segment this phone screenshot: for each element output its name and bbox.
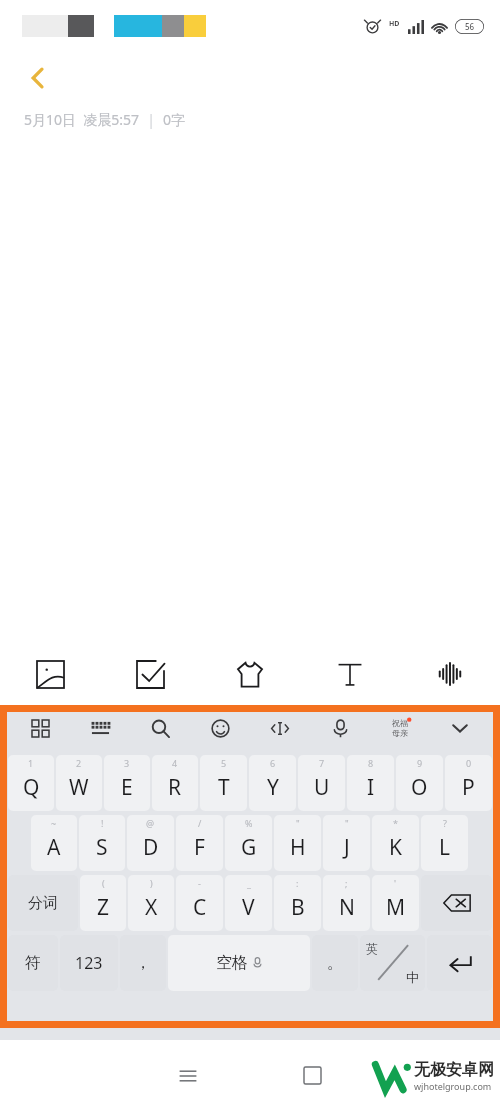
button[interactable]: 0 [445,755,492,811]
staticText: N [339,893,355,922]
button[interactable]: Cursor [250,705,310,751]
staticText: K [389,833,402,862]
button[interactable]: 1 [8,755,54,811]
button[interactable]: Voice input [400,643,500,705]
button[interactable]: 5 [200,755,247,811]
staticText: F [194,833,205,862]
button[interactable]: ~ [31,815,77,871]
button[interactable]: 符 [8,935,58,991]
button[interactable]: Backspace [421,875,492,931]
staticText: ( [102,877,105,889]
button[interactable]: 4 [152,755,198,811]
button[interactable]: Apps [10,705,70,751]
button[interactable]: Text format [300,643,400,705]
staticText: I [367,773,375,802]
staticText: B [291,893,305,922]
staticText: | [140,110,163,129]
button[interactable]: Style [200,643,300,705]
button[interactable]: Emoji [190,705,250,751]
button[interactable]: Insert image [0,643,100,705]
staticText: C [193,893,207,922]
staticText: 1 [28,757,34,769]
staticText: 123 [75,952,103,974]
staticText: : [296,877,299,889]
button[interactable]: * [372,815,419,871]
staticText: J [344,833,350,862]
button[interactable]: ' [372,875,419,931]
button[interactable]: 2 [56,755,102,811]
button[interactable]: Phrases [370,705,430,751]
staticText: O [411,773,428,802]
button[interactable]: Back [14,54,62,102]
staticText: " [296,817,300,829]
button[interactable]: ! [79,815,125,871]
button[interactable]: @ [127,815,174,871]
staticText: 分词 [28,894,58,913]
button[interactable]: 9 [396,755,443,811]
button[interactable]: Voice [310,705,370,751]
staticText: % [245,817,253,829]
button[interactable]: 7 [298,755,345,811]
button[interactable]: " [274,815,321,871]
staticText: 6 [270,757,276,769]
staticText: G [241,833,257,862]
staticText: HD [389,19,400,29]
button[interactable]: Hide keyboard [430,705,490,751]
button[interactable]: ， [120,935,166,991]
button[interactable]: 6 [249,755,296,811]
staticText: 0字 [163,110,186,129]
staticText: R [168,773,182,802]
staticText: 母亲 [392,728,408,738]
staticText: L [439,833,451,862]
staticText: ! [101,817,104,829]
staticText: ~ [51,817,57,829]
button[interactable]: Home [250,1040,375,1111]
button[interactable]: _ [225,875,272,931]
button[interactable]: Recent apps [125,1040,250,1111]
staticText: @ [146,817,155,829]
staticText: 2 [76,757,82,769]
button[interactable]: 。 [312,935,358,991]
button[interactable]: / [176,815,223,871]
staticText: 8 [368,757,374,769]
staticText: 符 [25,953,41,973]
button[interactable]: ) [128,875,174,931]
staticText: 7 [319,757,325,769]
button[interactable]: ? [421,815,468,871]
button[interactable]: : [274,875,321,931]
staticText: / [198,817,202,829]
staticText: W [69,773,89,802]
button[interactable]: Search [130,705,190,751]
staticText: 5月10日 凌晨5:57 [24,110,140,129]
button[interactable]: ( [80,875,126,931]
button[interactable]: 123 [60,935,118,991]
button[interactable]: Switch language [360,935,425,991]
button[interactable]: 分词 [8,875,78,931]
staticText: 英 [366,941,378,956]
staticText: V [242,893,255,922]
staticText: ， [135,953,151,973]
staticText: ; [345,877,348,889]
staticText: 5 [221,757,227,769]
staticText: 祝福 [392,718,408,728]
button[interactable]: Checklist [100,643,200,705]
staticText: 中 [406,969,419,985]
staticText: U [314,773,330,802]
staticText: " [345,817,349,829]
staticText: 。 [327,953,343,973]
button[interactable]: 空格 [168,935,310,991]
staticText: X [145,893,158,922]
button[interactable]: - [176,875,223,931]
button[interactable]: % [225,815,272,871]
staticText: S [96,833,108,862]
button[interactable]: 8 [347,755,394,811]
staticText: wjhotelgroup.com [414,1080,492,1092]
button[interactable]: 3 [104,755,150,811]
button[interactable]: " [323,815,370,871]
staticText: ? [443,817,447,829]
staticText: T [218,773,230,802]
staticText: 3 [124,757,130,769]
button[interactable]: Keyboard layout [70,705,130,751]
button[interactable]: ; [323,875,370,931]
button[interactable]: Enter [427,935,492,991]
